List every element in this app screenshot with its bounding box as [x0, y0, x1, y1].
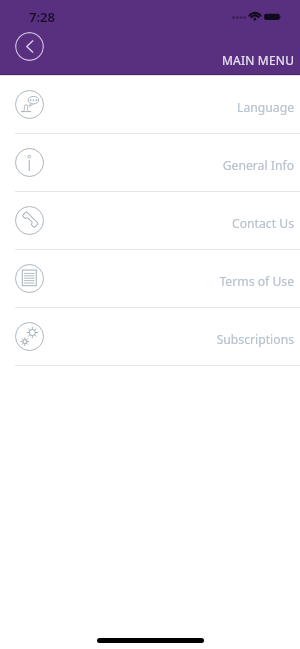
staticText: 7:28 — [29, 8, 55, 26]
button[interactable]: Contact Us — [0, 192, 300, 250]
button[interactable]: Subscriptions — [0, 308, 300, 366]
staticText: MAIN MENU — [222, 52, 295, 68]
staticText: Contact Us — [231, 215, 294, 232]
button[interactable]: General Info — [0, 134, 300, 192]
button[interactable]: Back — [15, 32, 44, 61]
staticText: General Info — [222, 157, 294, 174]
staticText: Language — [237, 99, 294, 116]
staticText: Subscriptions — [216, 331, 294, 348]
button[interactable]: Terms of Use — [0, 250, 300, 308]
button[interactable]: Language — [0, 76, 300, 134]
staticText: Terms of Use — [219, 273, 294, 290]
